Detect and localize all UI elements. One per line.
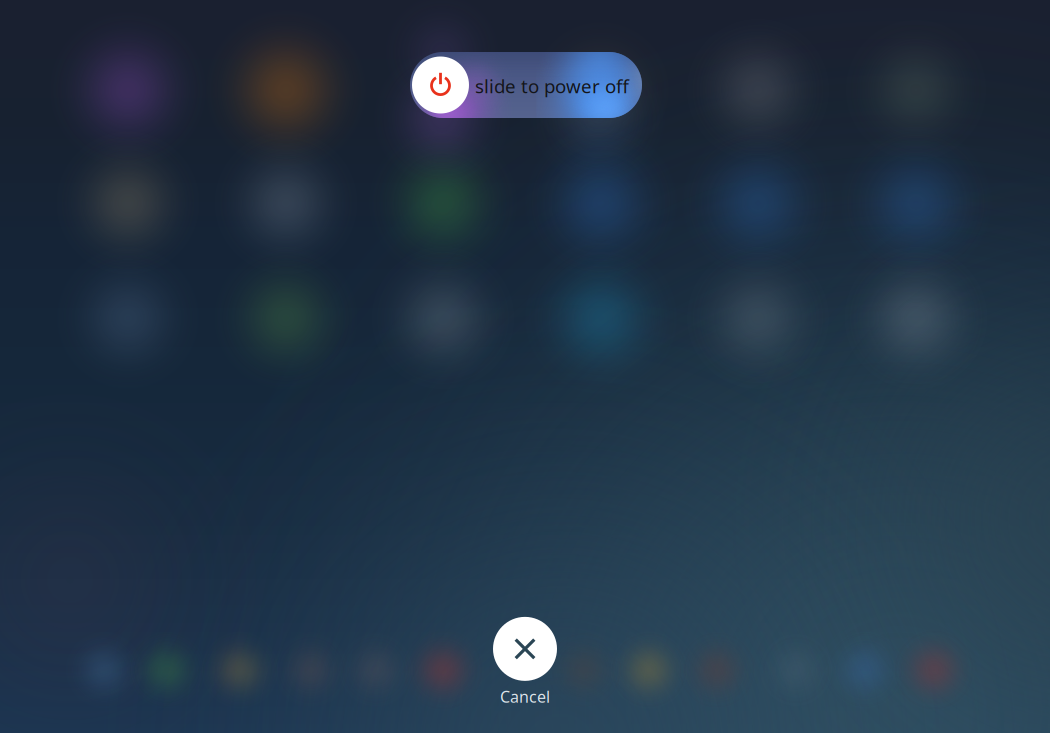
button[interactable]: Cancel bbox=[493, 617, 557, 707]
button[interactable]: slide to power off bbox=[410, 52, 642, 118]
staticText: Cancel bbox=[500, 686, 550, 707]
staticText: slide to power off bbox=[475, 74, 629, 98]
